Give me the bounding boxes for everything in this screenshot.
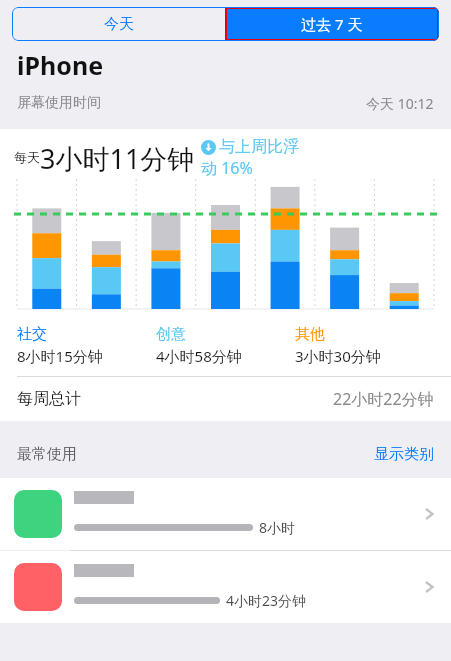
staticText: 每周总计 bbox=[17, 389, 81, 409]
staticText: 创意 bbox=[156, 325, 186, 344]
staticText: iPhone bbox=[17, 48, 104, 82]
staticText: 屏幕使用时间 bbox=[17, 94, 101, 112]
staticText: 社交 bbox=[17, 325, 47, 344]
staticText: 每天 bbox=[14, 149, 40, 165]
other: 详情 bbox=[419, 504, 439, 524]
staticText: 今天 bbox=[104, 15, 134, 34]
staticText: 动 16% bbox=[201, 157, 253, 179]
staticText: 3小时11分钟 bbox=[40, 140, 195, 177]
staticText: 4小时23分钟 bbox=[226, 591, 307, 610]
staticText: 3小时30分钟 bbox=[295, 346, 381, 366]
other: 详情 bbox=[419, 577, 439, 597]
staticText: 22小时22分钟 bbox=[333, 388, 434, 410]
staticText: 过去 7 天 bbox=[301, 14, 363, 34]
staticText: 今天 10:12 bbox=[366, 94, 434, 113]
button[interactable]: 4小时23分钟 bbox=[0, 551, 451, 623]
button[interactable]: 今天 bbox=[12, 7, 225, 41]
staticText: 显示类别 bbox=[374, 445, 434, 464]
button[interactable]: 8小时 bbox=[0, 478, 451, 550]
staticText: 8小时 bbox=[259, 518, 296, 537]
staticText: 与上周比浮 bbox=[219, 137, 299, 157]
staticText: 其他 bbox=[295, 325, 325, 344]
staticText: 最常使用 bbox=[17, 445, 77, 464]
button[interactable]: 显示类别 bbox=[374, 445, 434, 464]
button[interactable]: 过去 7 天 bbox=[225, 7, 439, 41]
staticText: 4小时58分钟 bbox=[156, 346, 242, 366]
staticText: 8小时15分钟 bbox=[17, 346, 103, 366]
